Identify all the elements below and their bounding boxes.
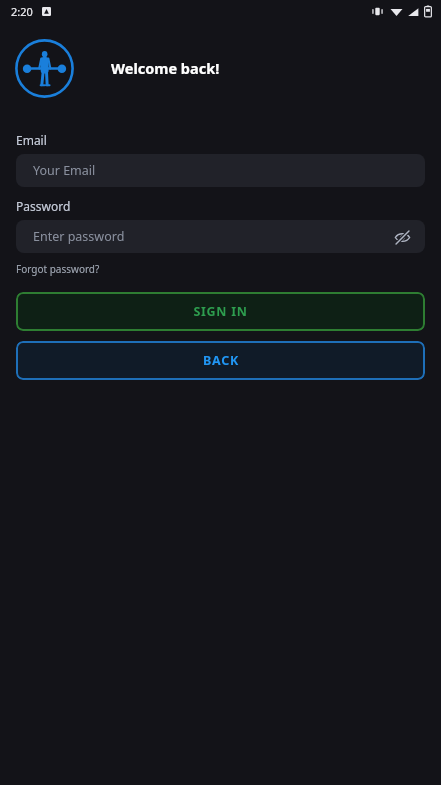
staticText: 2:20 (11, 4, 33, 19)
button[interactable]: Forgot password? (16, 262, 100, 276)
staticText: Password (16, 198, 71, 214)
button[interactable]: Enter password (16, 220, 425, 253)
button[interactable]: BACK (16, 341, 425, 380)
staticText: Welcome back! (111, 58, 220, 78)
button[interactable]: SIGN IN (16, 292, 425, 331)
staticText: Forgot password? (16, 262, 100, 276)
staticText: BACK (203, 352, 239, 369)
button[interactable]: Show password (388, 223, 416, 251)
staticText: SIGN IN (193, 303, 248, 320)
staticText: Enter password (33, 228, 125, 245)
staticText: Your Email (33, 162, 96, 179)
staticText: Email (16, 132, 47, 148)
button[interactable]: Your Email (16, 154, 425, 187)
